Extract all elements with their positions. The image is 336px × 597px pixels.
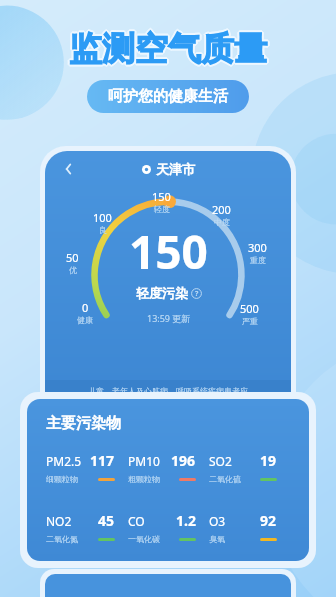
staticText: 呵护您的健康生活	[108, 87, 228, 106]
staticText: 200	[212, 202, 231, 217]
staticText: 13:59 更新	[147, 312, 191, 324]
staticText: 二氧化氮	[46, 534, 78, 544]
staticText: 1.2	[176, 511, 196, 530]
staticText: 优	[69, 265, 77, 275]
staticText: 117	[90, 451, 115, 470]
staticText: 监测空气质量	[70, 27, 268, 69]
staticText: 监测空气质量	[69, 30, 267, 72]
button[interactable]: CO	[128, 511, 209, 544]
staticText: 二氧化硫	[209, 474, 241, 484]
staticText: 300	[248, 240, 267, 255]
staticText: 臭氧	[209, 534, 225, 544]
button[interactable]: NO2	[46, 511, 128, 544]
staticText: 主要污染物	[46, 414, 121, 433]
staticText: 健康	[77, 315, 93, 325]
staticText: 严重	[242, 316, 258, 326]
staticText: 150	[129, 220, 208, 283]
staticText: SO2	[209, 453, 232, 469]
staticText: 500	[240, 301, 259, 316]
staticText: 19	[260, 451, 277, 470]
staticText: 196	[171, 451, 196, 470]
staticText: 监测空气质量	[67, 28, 265, 70]
staticText: 监测空气质量	[69, 28, 267, 70]
staticText: 监测空气质量	[70, 29, 268, 71]
staticText: 92	[260, 511, 277, 530]
staticText: NO2	[46, 513, 72, 529]
button[interactable]: PM2.5	[46, 451, 128, 484]
button[interactable]: Info	[191, 288, 202, 299]
staticText: ?	[195, 289, 199, 299]
button[interactable]: O3	[209, 511, 290, 544]
staticText: 一氧化碳	[128, 534, 160, 544]
staticText: 150	[152, 189, 171, 204]
button[interactable]: Back	[56, 157, 80, 181]
staticText: PM2.5	[46, 453, 82, 469]
button[interactable]: 呵护您的健康生活	[87, 80, 249, 113]
staticText: 良	[99, 225, 107, 235]
staticText: 100	[93, 210, 112, 225]
staticText: 粗颗粒物	[128, 474, 160, 484]
staticText: 45	[98, 511, 115, 530]
staticText: 监测空气质量	[69, 26, 267, 68]
staticText: 重度	[250, 255, 266, 265]
staticText: PM10	[128, 453, 160, 469]
staticText: 中度	[214, 217, 230, 227]
staticText: 细颗粒物	[46, 474, 78, 484]
staticText: 天津市	[156, 161, 195, 177]
staticText: 监测空气质量	[68, 27, 266, 69]
staticText: 监测空气质量	[71, 28, 269, 70]
staticText: O3	[209, 513, 226, 529]
staticText: CO	[128, 513, 145, 529]
staticText: 轻度	[154, 204, 170, 214]
staticText: 0	[82, 300, 89, 315]
button[interactable]: PM10	[128, 451, 209, 484]
staticText: 轻度污染	[136, 285, 188, 301]
staticText: 监测空气质量	[68, 29, 266, 71]
button[interactable]: SO2	[209, 451, 290, 484]
staticText: 儿童、老年人及心脏病、呼吸系统疾病患者应	[88, 386, 248, 396]
staticText: 50	[66, 250, 79, 265]
